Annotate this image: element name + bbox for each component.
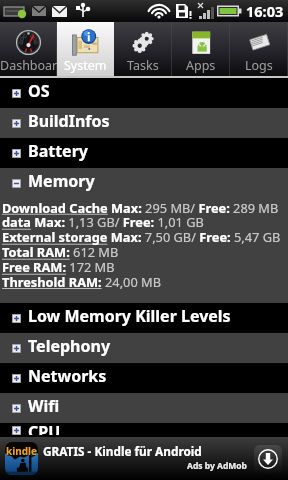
button[interactable]: kindle [0,437,288,480]
staticText: Logs [245,57,273,74]
staticText: GRATIS - Kindle für Android [43,443,202,459]
button[interactable]: BuildInfos [0,108,288,138]
staticText: Telephony [28,335,111,357]
staticText: System [64,57,107,74]
button[interactable]: Apps [172,22,230,76]
staticText: Tasks [127,57,159,74]
staticText: Low Memory Killer Levels [28,305,231,327]
button[interactable]: Dashboard [0,22,57,76]
staticText: Memory [28,170,95,192]
button[interactable]: Tasks [114,22,172,76]
button[interactable]: System [57,22,114,76]
staticText: Ads by AdMob [187,460,247,472]
staticText: Apps [186,57,216,74]
staticText: CPU [28,421,61,435]
staticText: 16:03 [246,1,284,21]
staticText: Download Cache Max: 295 MB/ Free: 289 MB… [2,199,281,291]
staticText: OS [28,80,50,102]
staticText: Battery [28,140,88,162]
staticText: Networks [28,365,107,387]
button[interactable]: Networks [0,363,288,393]
button[interactable]: Memory [0,168,288,198]
button[interactable]: Telephony [0,333,288,363]
button[interactable]: Wifi [0,393,288,423]
staticText: BuildInfos [28,110,110,132]
button[interactable]: Download [254,445,282,473]
button[interactable]: Battery [0,138,288,168]
staticText: kindle [6,444,37,458]
button[interactable]: Low Memory Killer Levels [0,303,288,333]
button[interactable]: CPU [0,423,288,437]
staticText: Dashboard [0,57,57,74]
staticText: Wifi [28,395,60,417]
button[interactable]: Logs [230,22,288,76]
button[interactable]: OS [0,78,288,108]
